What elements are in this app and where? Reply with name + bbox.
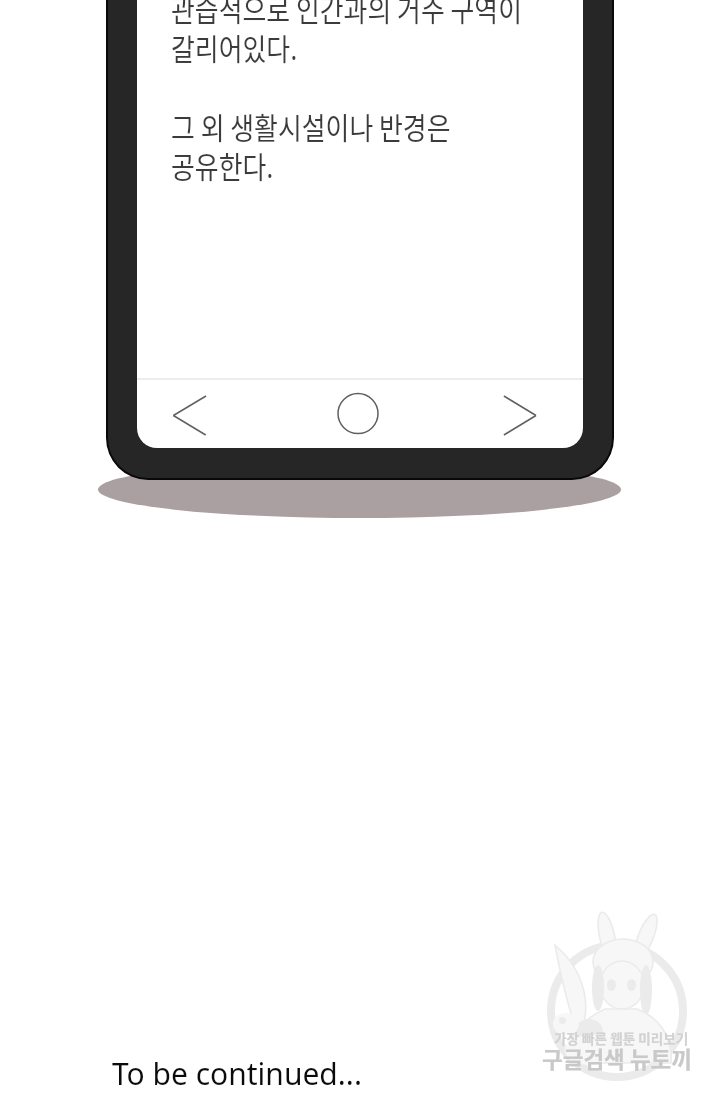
- staticText: 관습적으로 인간과의 거주 구역이 갈리어있다.: [171, 0, 522, 69]
- staticText: 그 외 생활시설이나 반경은 공유한다.: [171, 105, 451, 187]
- staticText: 구글검색 뉴토끼: [542, 1042, 693, 1075]
- staticText: 가장 빠른 웹툰 미리보기: [554, 1028, 689, 1048]
- staticText: To be continued...: [112, 1053, 362, 1094]
- button[interactable]: Back: [145, 383, 217, 443]
- button[interactable]: Forward: [495, 383, 567, 443]
- button[interactable]: Watermark: [540, 930, 720, 1098]
- button[interactable]: Home: [322, 383, 394, 443]
